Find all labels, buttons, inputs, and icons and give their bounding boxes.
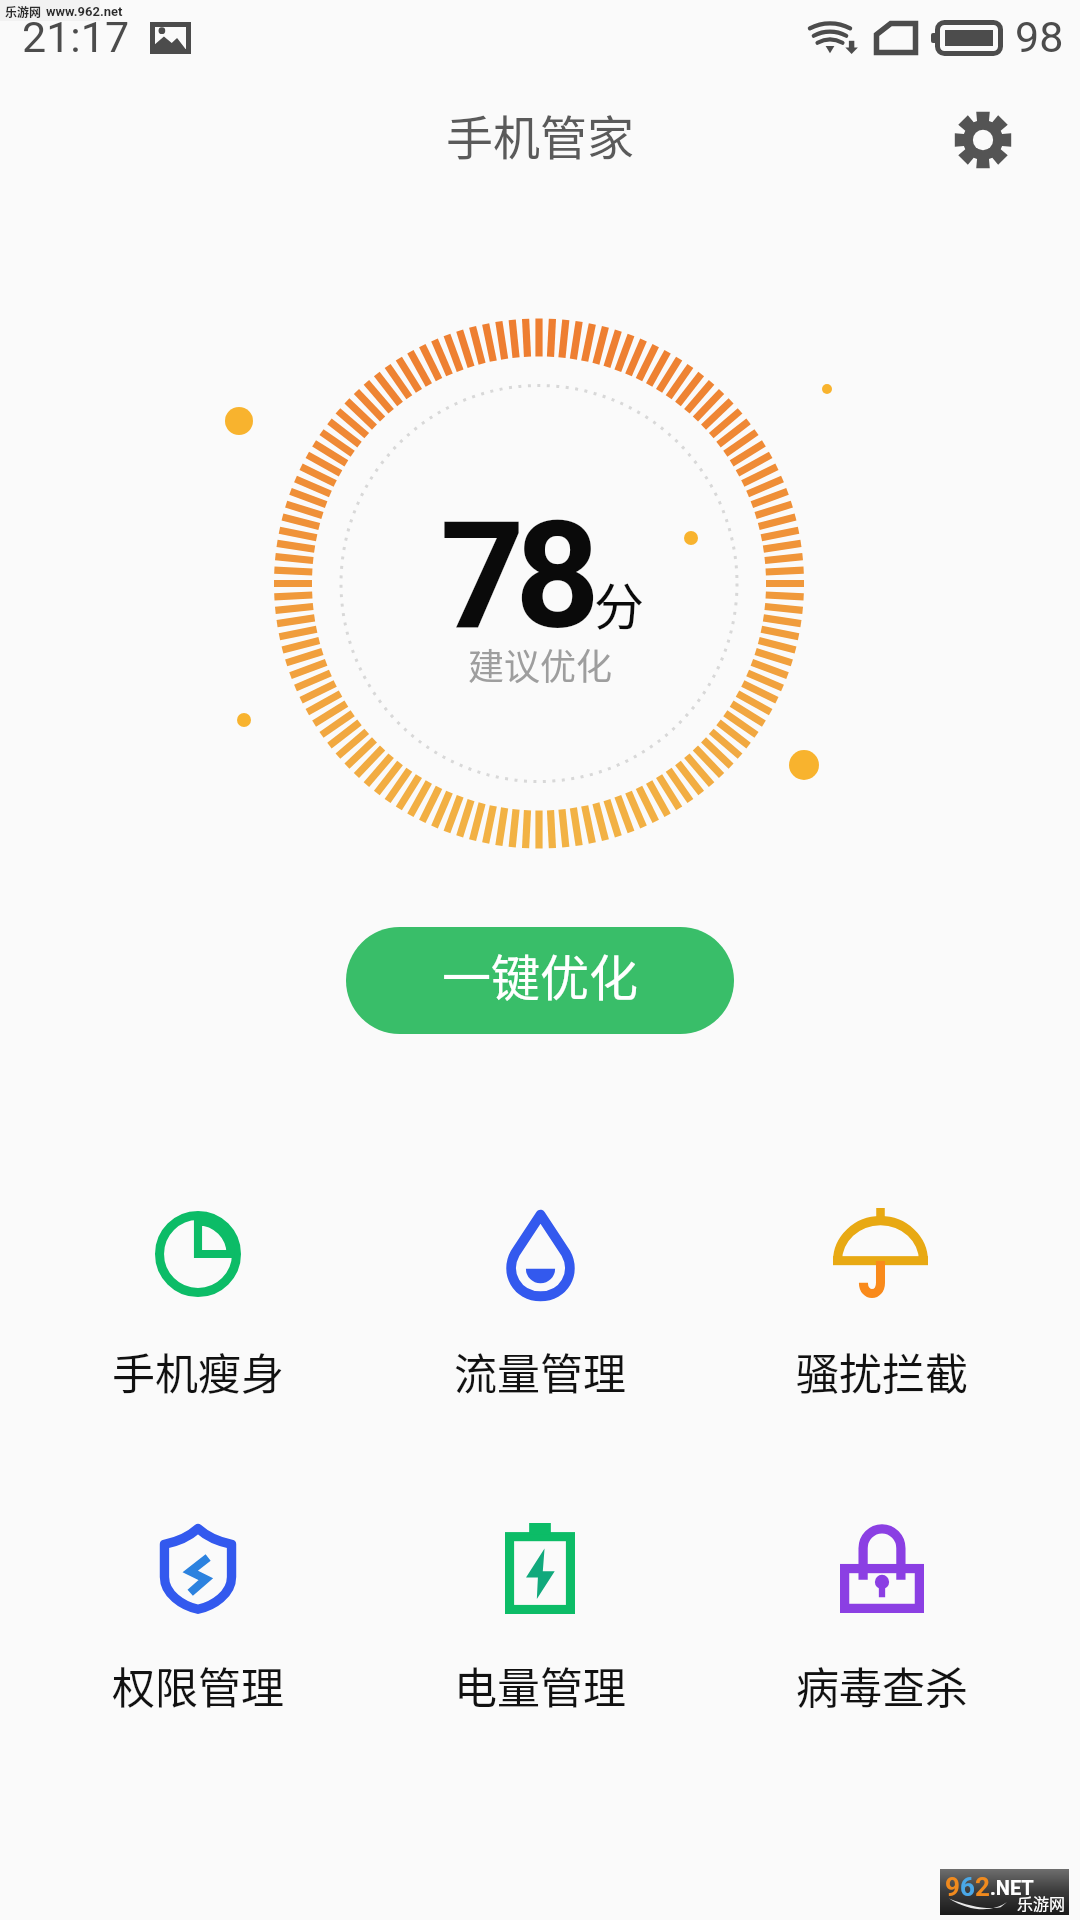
staticText: 骚扰拦截 [796,1340,968,1402]
staticText: 乐游网 [1017,1891,1066,1914]
staticText: 电量管理 [454,1654,626,1716]
button[interactable]: 骚扰拦截 [742,1190,1022,1404]
staticText: 21:17 [22,12,130,62]
staticText: 9 [945,1872,960,1902]
staticText: 分 [594,567,644,639]
staticText: 手机管家 [446,100,634,168]
staticText: 78 [440,490,590,663]
staticText: 6 [960,1872,975,1902]
staticText: 手机瘦身 [112,1340,284,1402]
button[interactable]: Settings [940,97,1026,183]
staticText: 流量管理 [454,1340,626,1402]
button[interactable]: 病毒查杀 [742,1504,1022,1718]
staticText: www.962.net [46,4,123,19]
button[interactable]: 电量管理 [400,1504,680,1718]
staticText: 2 [975,1872,990,1902]
staticText: 一键优化 [442,939,639,1010]
staticText: 乐游网 [5,3,42,20]
button[interactable]: 手机瘦身 [58,1190,338,1404]
staticText: 98 [1015,12,1064,62]
staticText: 权限管理 [112,1654,284,1716]
staticText: 病毒查杀 [796,1654,968,1716]
button[interactable]: 权限管理 [58,1504,338,1718]
staticText: .NET [990,1876,1034,1899]
button[interactable]: 流量管理 [400,1190,680,1404]
staticText: 建议优化 [468,638,613,690]
button[interactable]: 一键优化 [346,927,734,1034]
